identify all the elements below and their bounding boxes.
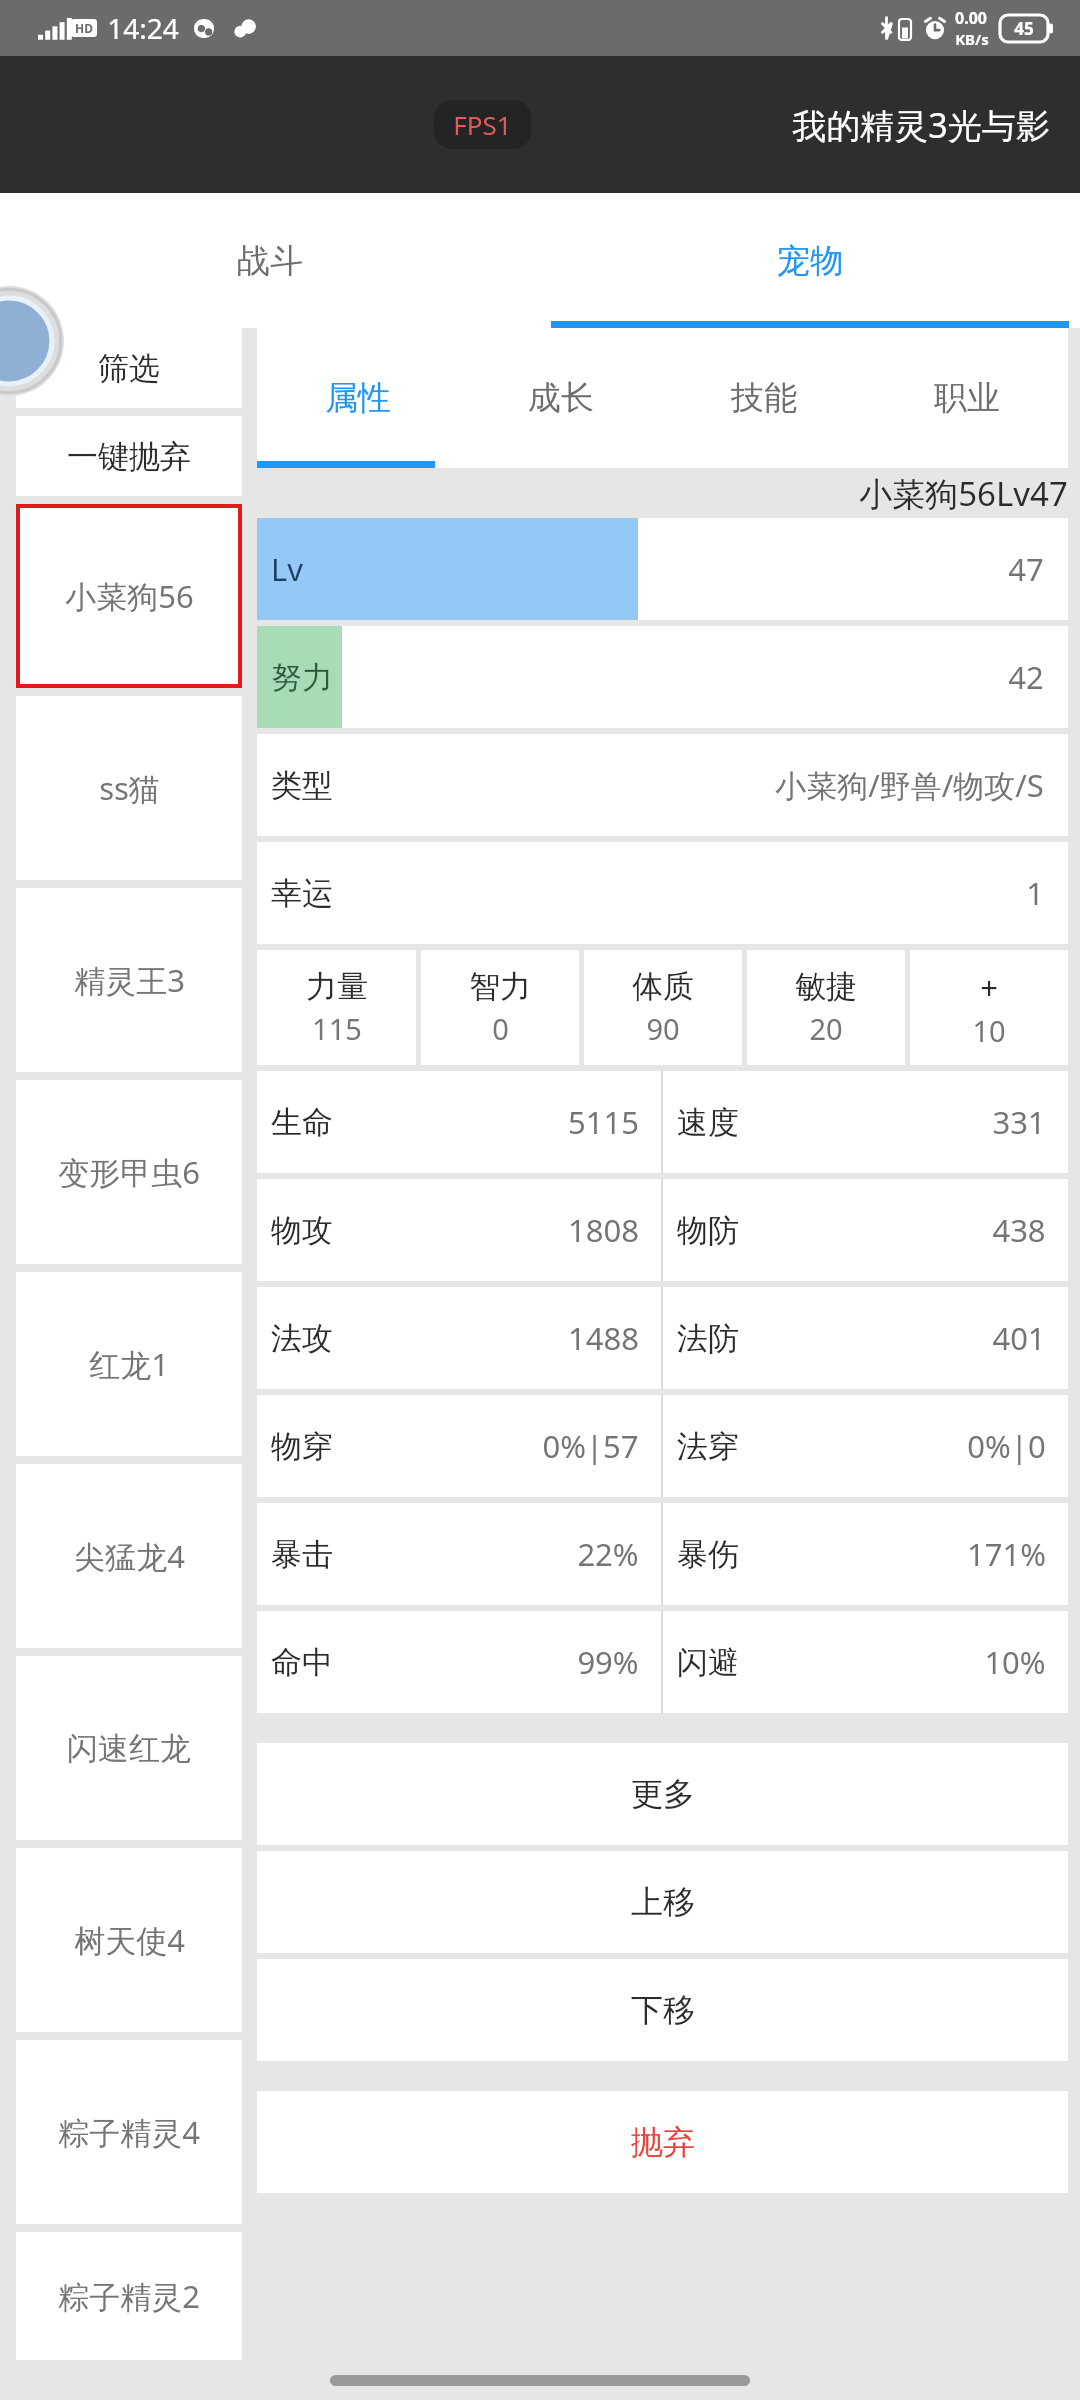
staticText: 生命 xyxy=(271,1103,333,1142)
staticText: 红龙1 xyxy=(89,1343,169,1385)
staticText: 物防 xyxy=(677,1211,739,1250)
button[interactable]: 法穿 xyxy=(663,1395,1068,1497)
staticText: 树天使4 xyxy=(74,1919,185,1961)
button[interactable]: ss猫 xyxy=(16,696,242,880)
staticText: 5115 xyxy=(568,1101,639,1143)
staticText: 我的精灵3光与影 xyxy=(792,102,1050,148)
button[interactable]: 职业 xyxy=(865,328,1068,468)
staticText: 0%|57 xyxy=(542,1425,639,1467)
button[interactable]: 变形甲虫6 xyxy=(16,1080,242,1264)
staticText: 暴击 xyxy=(271,1535,333,1574)
staticText: 小菜狗56 xyxy=(65,575,194,617)
button[interactable]: 宠物 xyxy=(540,193,1080,328)
button[interactable]: 暴伤 xyxy=(663,1503,1068,1605)
staticText: 法防 xyxy=(677,1319,739,1358)
button[interactable]: 类型 xyxy=(257,734,1068,836)
staticText: 90 xyxy=(646,1009,680,1048)
staticText: 0%|0 xyxy=(967,1425,1046,1467)
staticText: 抛弃 xyxy=(631,2122,695,2162)
button[interactable]: 命中 xyxy=(257,1611,661,1713)
staticText: 20 xyxy=(809,1009,843,1048)
button[interactable]: 法防 xyxy=(663,1287,1068,1389)
staticText: KB/s xyxy=(955,29,989,49)
staticText: 小菜狗56Lv47 xyxy=(859,471,1068,516)
button[interactable]: 智力 xyxy=(421,950,579,1065)
staticText: HD xyxy=(75,20,93,36)
staticText: 尖猛龙4 xyxy=(74,1535,185,1577)
button[interactable]: 体质 xyxy=(584,950,742,1065)
button[interactable]: FPS1 xyxy=(434,100,531,149)
button[interactable]: 闪避 xyxy=(663,1611,1068,1713)
button[interactable]: 努力 xyxy=(257,626,1068,728)
button[interactable]: 技能 xyxy=(662,328,865,468)
staticText: 法穿 xyxy=(677,1427,739,1466)
staticText: 力量 xyxy=(306,967,368,1006)
button[interactable]: 粽子精灵4 xyxy=(16,2040,242,2224)
staticText: 小菜狗/野兽/物攻/S xyxy=(775,764,1044,806)
button[interactable]: 战斗 xyxy=(0,193,540,328)
staticText: 115 xyxy=(312,1009,362,1048)
button[interactable]: 力量 xyxy=(257,950,416,1065)
staticText: 下移 xyxy=(631,1990,695,2030)
button[interactable]: Lv xyxy=(257,518,1068,620)
button[interactable]: + xyxy=(910,950,1068,1065)
button[interactable]: 速度 xyxy=(663,1071,1068,1173)
staticText: 42 xyxy=(1008,656,1044,698)
staticText: 10 xyxy=(972,1011,1006,1050)
staticText: 1488 xyxy=(568,1317,639,1359)
button[interactable]: 幸运 xyxy=(257,842,1068,944)
button[interactable]: 树天使4 xyxy=(16,1848,242,2032)
button[interactable]: 成长 xyxy=(459,328,662,468)
staticText: 类型 xyxy=(271,766,333,805)
staticText: 22% xyxy=(577,1533,639,1575)
button[interactable]: 小菜狗56 xyxy=(16,504,242,688)
staticText: 0 xyxy=(492,1009,509,1048)
staticText: Lv xyxy=(271,548,303,590)
staticText: 粽子精灵4 xyxy=(58,2111,200,2153)
staticText: 战斗 xyxy=(237,240,303,282)
button[interactable]: 物攻 xyxy=(257,1179,661,1281)
staticText: 10% xyxy=(984,1641,1046,1683)
button[interactable]: 物穿 xyxy=(257,1395,661,1497)
button[interactable]: 暴击 xyxy=(257,1503,661,1605)
staticText: 14:24 xyxy=(107,9,179,47)
staticText: 物攻 xyxy=(271,1211,333,1250)
button[interactable]: 更多 xyxy=(257,1743,1068,1845)
staticText: 物穿 xyxy=(271,1427,333,1466)
staticText: 1 xyxy=(1026,872,1044,914)
staticText: 一键抛弃 xyxy=(67,437,191,476)
button[interactable]: 筛选 xyxy=(16,328,242,408)
button[interactable]: Floating assistant xyxy=(0,286,64,396)
button[interactable]: 精灵王3 xyxy=(16,888,242,1072)
staticText: 47 xyxy=(1008,548,1044,590)
button[interactable]: 物防 xyxy=(663,1179,1068,1281)
staticText: FPS1 xyxy=(453,107,512,142)
staticText: 命中 xyxy=(271,1643,333,1682)
button[interactable]: 一键抛弃 xyxy=(16,416,242,496)
button[interactable]: 闪速红龙 xyxy=(16,1656,242,1840)
staticText: ss猫 xyxy=(99,767,160,809)
button[interactable]: 下移 xyxy=(257,1959,1068,2061)
staticText: 闪速红龙 xyxy=(67,1729,191,1768)
button[interactable]: 生命 xyxy=(257,1071,661,1173)
staticText: 成长 xyxy=(528,377,594,419)
staticText: 1808 xyxy=(568,1209,639,1251)
button[interactable]: 红龙1 xyxy=(16,1272,242,1456)
button[interactable]: 敏捷 xyxy=(747,950,905,1065)
staticText: 更多 xyxy=(631,1774,695,1814)
staticText: 粽子精灵2 xyxy=(58,2275,200,2317)
staticText: 筛选 xyxy=(98,349,160,388)
staticText: 属性 xyxy=(325,377,391,419)
staticText: 99% xyxy=(577,1641,639,1683)
staticText: 暴伤 xyxy=(677,1535,739,1574)
button[interactable]: 法攻 xyxy=(257,1287,661,1389)
button[interactable]: 粽子精灵2 xyxy=(16,2232,242,2360)
button[interactable]: 属性 xyxy=(257,328,459,468)
button[interactable]: 上移 xyxy=(257,1851,1068,1953)
staticText: 努力 xyxy=(271,658,333,697)
staticText: 401 xyxy=(992,1317,1046,1359)
staticText: 438 xyxy=(992,1209,1046,1251)
button[interactable]: 抛弃 xyxy=(257,2091,1068,2193)
staticText: 变形甲虫6 xyxy=(58,1151,200,1193)
button[interactable]: 尖猛龙4 xyxy=(16,1464,242,1648)
